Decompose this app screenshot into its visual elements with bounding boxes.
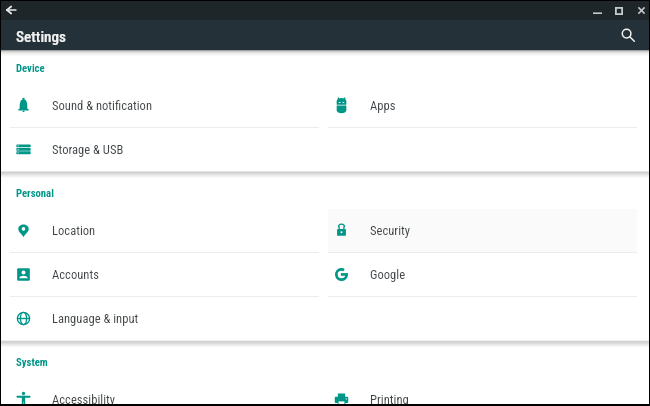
staticText: Accessibility bbox=[52, 392, 116, 404]
button[interactable]: Sound & notification bbox=[10, 84, 319, 128]
staticText: Security bbox=[370, 223, 411, 238]
button[interactable]: Google bbox=[328, 253, 637, 297]
button[interactable]: Location bbox=[10, 209, 319, 253]
button[interactable]: Storage & USB bbox=[10, 128, 319, 172]
button[interactable]: Security bbox=[328, 209, 637, 253]
button[interactable]: Maximize bbox=[608, 1, 630, 20]
staticText: System bbox=[16, 356, 48, 369]
button[interactable]: Search bbox=[615, 22, 641, 48]
staticText: Printing bbox=[370, 392, 409, 404]
staticText: Device bbox=[16, 62, 45, 75]
staticText: Settings bbox=[16, 28, 66, 46]
staticText: Location bbox=[52, 223, 96, 238]
staticText: Google bbox=[370, 267, 406, 282]
button[interactable]: Accessibility bbox=[10, 378, 319, 404]
staticText: Sound & notification bbox=[52, 98, 153, 113]
staticText: Accounts bbox=[52, 267, 99, 282]
button[interactable]: Accounts bbox=[10, 253, 319, 297]
button[interactable]: Apps bbox=[328, 84, 637, 128]
staticText: Language & input bbox=[52, 311, 139, 326]
staticText: Personal bbox=[16, 187, 54, 200]
button[interactable]: Back bbox=[1, 1, 20, 19]
staticText: Storage & USB bbox=[52, 142, 124, 157]
button[interactable]: Printing bbox=[328, 378, 637, 404]
button[interactable]: Language & input bbox=[10, 297, 319, 341]
button[interactable]: Close bbox=[630, 1, 650, 20]
staticText: Apps bbox=[370, 98, 396, 113]
button[interactable]: Minimize bbox=[586, 1, 608, 20]
